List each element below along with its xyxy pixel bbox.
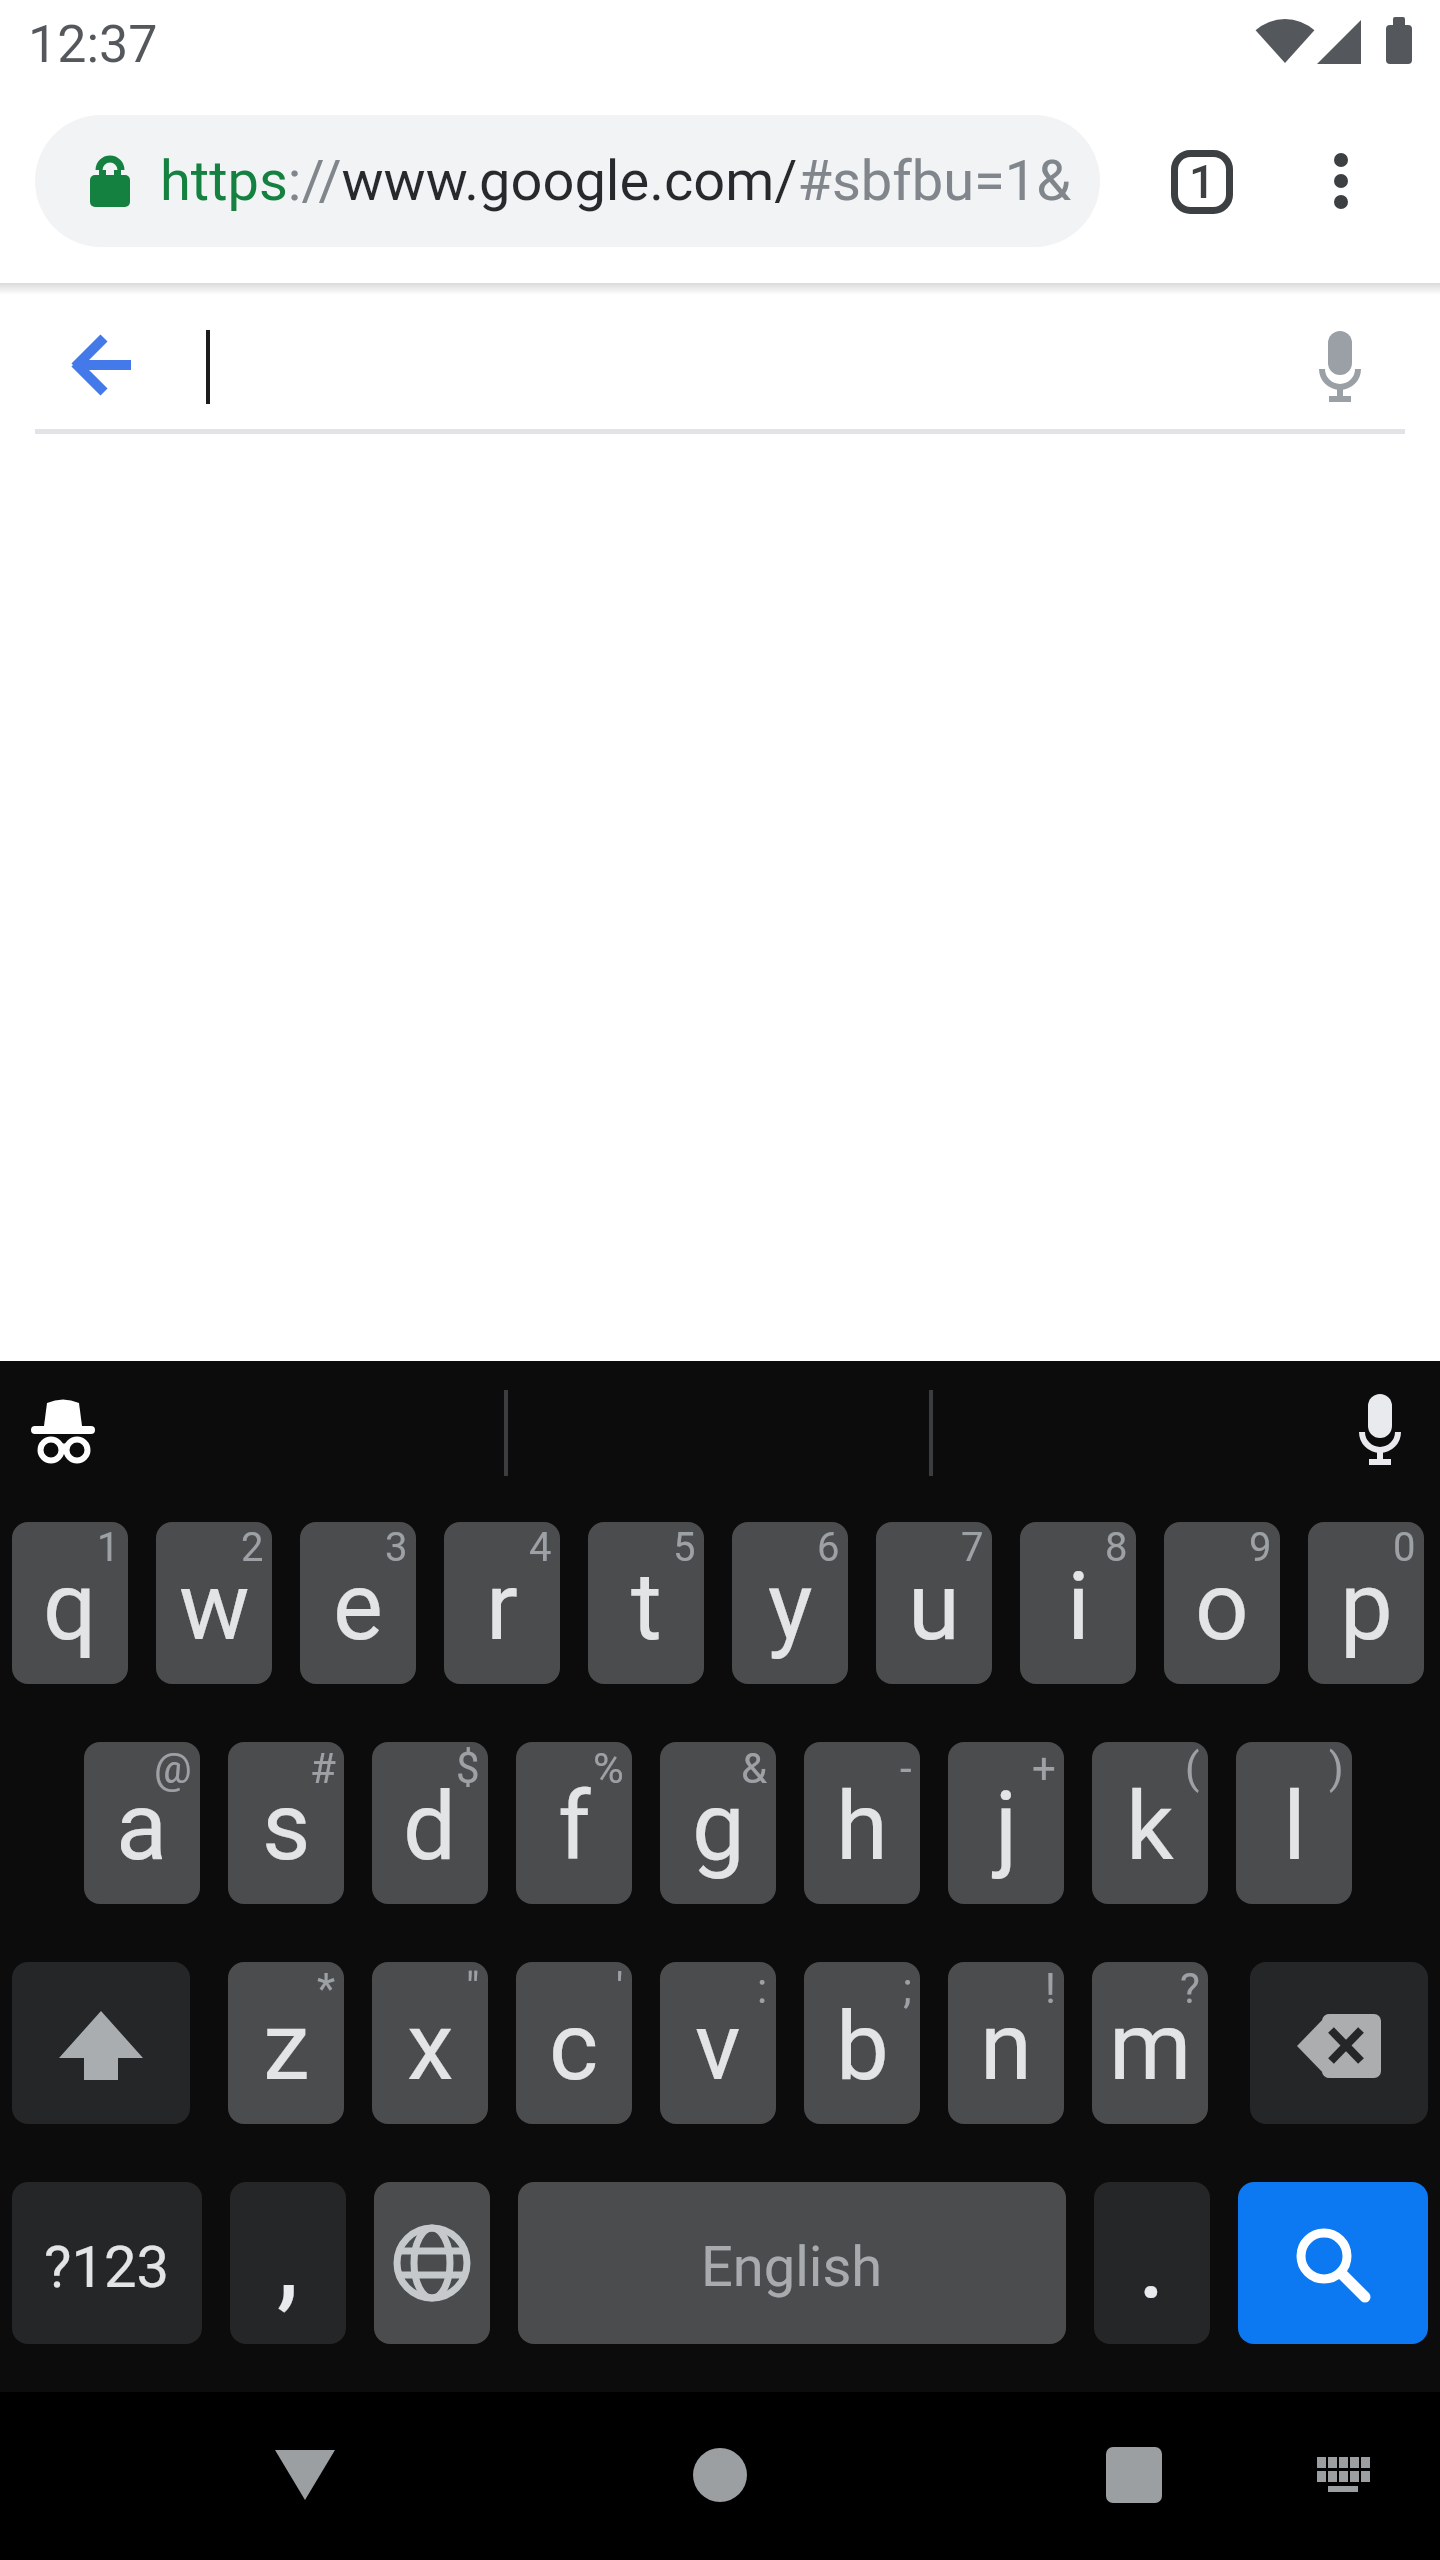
staticText: 5 bbox=[673, 1524, 696, 1571]
staticText: w bbox=[179, 1552, 250, 1662]
button[interactable] bbox=[1084, 2425, 1184, 2525]
staticText: l bbox=[1283, 1772, 1306, 1882]
staticText: + bbox=[1032, 1744, 1056, 1793]
staticText: h bbox=[836, 1772, 888, 1882]
staticText: # bbox=[310, 1744, 336, 1793]
button[interactable] bbox=[12, 1962, 190, 2124]
button[interactable]: s bbox=[228, 1742, 344, 1904]
button[interactable]: x bbox=[372, 1962, 488, 2124]
staticText: k bbox=[1126, 1772, 1174, 1882]
staticText: 2 bbox=[241, 1524, 264, 1571]
staticText: e bbox=[333, 1552, 383, 1662]
staticText: - bbox=[900, 1744, 912, 1793]
staticText: * bbox=[317, 1964, 336, 2013]
staticText: : bbox=[757, 1964, 768, 2013]
button[interactable]: z bbox=[228, 1962, 344, 2124]
staticText: . bbox=[1137, 2195, 1167, 2324]
staticText: ! bbox=[1045, 1964, 1056, 2013]
staticText: 8 bbox=[1105, 1524, 1128, 1571]
button[interactable]: u bbox=[876, 1522, 992, 1684]
staticText: , bbox=[277, 2195, 299, 2324]
staticText: r bbox=[486, 1552, 518, 1662]
staticText: ) bbox=[1329, 1744, 1344, 1793]
staticText: 0 bbox=[1393, 1524, 1416, 1571]
staticText: & bbox=[741, 1744, 768, 1793]
button[interactable]: . bbox=[1094, 2182, 1210, 2344]
button[interactable]: k bbox=[1092, 1742, 1208, 1904]
staticText: 4 bbox=[529, 1524, 552, 1571]
staticText: % bbox=[593, 1744, 624, 1793]
button[interactable] bbox=[374, 2182, 490, 2344]
staticText: m bbox=[1109, 1992, 1192, 2102]
staticText: 12:37 bbox=[28, 14, 158, 75]
button[interactable] bbox=[1300, 320, 1380, 416]
button[interactable]: f bbox=[516, 1742, 632, 1904]
button[interactable]: ?123 bbox=[12, 2182, 202, 2344]
button[interactable]: v bbox=[660, 1962, 776, 2124]
staticText: j bbox=[995, 1772, 1018, 1882]
staticText: @ bbox=[154, 1744, 192, 1793]
button[interactable]: , bbox=[230, 2182, 346, 2344]
button[interactable]: 1 bbox=[1160, 140, 1244, 224]
button[interactable]: i bbox=[1020, 1522, 1136, 1684]
button[interactable]: https://www.google.com/#sbfbu=1& bbox=[35, 115, 1100, 247]
staticText: a bbox=[116, 1772, 168, 1882]
button[interactable]: h bbox=[804, 1742, 920, 1904]
staticText: b bbox=[836, 1992, 889, 2102]
staticText: ? bbox=[1180, 1964, 1200, 2013]
staticText: 1 bbox=[97, 1524, 120, 1571]
button[interactable]: w bbox=[156, 1522, 272, 1684]
staticText: y bbox=[768, 1552, 813, 1662]
staticText: x bbox=[407, 1992, 454, 2102]
staticText: v bbox=[695, 1992, 741, 2102]
button[interactable]: q bbox=[12, 1522, 128, 1684]
button[interactable]: m bbox=[1092, 1962, 1208, 2124]
button[interactable] bbox=[1250, 1962, 1428, 2124]
staticText: i bbox=[1067, 1552, 1090, 1662]
staticText: 1 bbox=[1189, 155, 1216, 209]
button[interactable]: y bbox=[732, 1522, 848, 1684]
button[interactable]: a bbox=[84, 1742, 200, 1904]
staticText: u bbox=[908, 1552, 960, 1662]
button[interactable] bbox=[1238, 2182, 1428, 2344]
staticText: " bbox=[466, 1964, 480, 2013]
staticText: g bbox=[692, 1772, 745, 1882]
button[interactable] bbox=[255, 2425, 355, 2525]
staticText: f bbox=[558, 1772, 591, 1882]
button[interactable] bbox=[10, 1378, 116, 1484]
staticText: z bbox=[263, 1992, 310, 2102]
staticText: https://www.google.com/#sbfbu=1& bbox=[160, 148, 1072, 214]
staticText: ; bbox=[903, 1964, 912, 2013]
button[interactable]: o bbox=[1164, 1522, 1280, 1684]
staticText: d bbox=[403, 1772, 457, 1882]
staticText: 9 bbox=[1249, 1524, 1272, 1571]
button[interactable] bbox=[1330, 1378, 1430, 1484]
staticText: c bbox=[549, 1992, 599, 2102]
staticText: $ bbox=[456, 1744, 480, 1793]
staticText: ( bbox=[1185, 1744, 1200, 1793]
button[interactable]: c bbox=[516, 1962, 632, 2124]
button[interactable]: e bbox=[300, 1522, 416, 1684]
button[interactable]: r bbox=[444, 1522, 560, 1684]
button[interactable] bbox=[58, 320, 148, 410]
button[interactable]: t bbox=[588, 1522, 704, 1684]
staticText: English bbox=[701, 2234, 883, 2300]
button[interactable]: d bbox=[372, 1742, 488, 1904]
button[interactable]: l bbox=[1236, 1742, 1352, 1904]
staticText: q bbox=[43, 1552, 97, 1662]
staticText: 3 bbox=[385, 1524, 408, 1571]
button[interactable] bbox=[1306, 140, 1376, 224]
button[interactable] bbox=[670, 2425, 770, 2525]
staticText: 7 bbox=[961, 1524, 984, 1571]
button[interactable]: English bbox=[518, 2182, 1066, 2344]
button[interactable]: b bbox=[804, 1962, 920, 2124]
staticText: ' bbox=[616, 1964, 624, 2013]
staticText: p bbox=[1340, 1552, 1393, 1662]
button[interactable]: j bbox=[948, 1742, 1064, 1904]
staticText: ?123 bbox=[44, 2233, 170, 2301]
button[interactable]: g bbox=[660, 1742, 776, 1904]
button[interactable] bbox=[1293, 2425, 1393, 2525]
button[interactable]: n bbox=[948, 1962, 1064, 2124]
button[interactable]: p bbox=[1308, 1522, 1424, 1684]
staticText: o bbox=[1195, 1552, 1249, 1662]
